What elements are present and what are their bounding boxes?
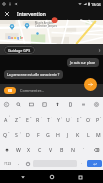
staticText: ' <box>83 147 84 152</box>
button[interactable]: A <box>0 112 11 127</box>
button[interactable]: Z <box>11 112 22 127</box>
button[interactable]: La personne est-elle consciente ? <box>4 70 63 79</box>
staticText: ?123 <box>4 161 12 166</box>
staticText: Guidage GPS <box>8 48 31 53</box>
staticText: M <box>96 131 101 138</box>
button[interactable]: Stickers <box>38 97 51 112</box>
button[interactable]: V <box>45 142 56 157</box>
button[interactable]: GIF <box>25 97 38 112</box>
staticText: e <box>21 35 24 40</box>
staticText: G <box>8 35 11 40</box>
staticText: S <box>15 131 18 138</box>
staticText: F <box>37 131 40 138</box>
button[interactable]: X <box>23 142 34 157</box>
button[interactable]: Emoji <box>23 157 32 170</box>
staticText: 18:04 <box>91 2 101 7</box>
staticText: ' <box>51 115 52 118</box>
staticText: I <box>77 116 79 123</box>
staticText: K <box>76 131 80 138</box>
staticText: è <box>80 115 82 118</box>
staticText: Musée Anglais - Collection Jacques <box>35 21 58 27</box>
staticText: T <box>47 116 50 123</box>
button[interactable]: U <box>63 112 73 127</box>
button[interactable]: Send message <box>84 78 97 91</box>
button[interactable]: Back <box>18 172 28 182</box>
button[interactable]: Theme <box>51 97 64 112</box>
button[interactable]: L <box>83 127 93 142</box>
staticText: V <box>49 146 53 153</box>
button[interactable]: C <box>34 142 45 157</box>
button[interactable]: T <box>43 112 53 127</box>
button[interactable]: Profile <box>4 87 16 94</box>
staticText: é <box>30 115 32 118</box>
button[interactable]: R <box>33 112 43 127</box>
button[interactable]: ' <box>78 142 89 157</box>
staticText: o <box>11 35 14 40</box>
staticText: Q <box>3 131 8 138</box>
staticText: X <box>27 146 31 153</box>
button[interactable]: B <box>56 142 67 157</box>
button[interactable]: Recents <box>75 172 85 182</box>
button[interactable]: Je suis sur place <box>67 58 99 67</box>
staticText: KB <box>8 89 12 93</box>
staticText: ( <box>61 115 62 118</box>
button[interactable]: H <box>53 127 63 142</box>
button[interactable]: N <box>67 142 78 157</box>
button[interactable]: Home <box>47 172 57 182</box>
staticText: Commenter... <box>20 88 44 93</box>
button[interactable]: M <box>93 127 103 142</box>
button[interactable]: Collapse <box>0 97 12 112</box>
staticText: W <box>16 146 21 153</box>
staticText: Intervention <box>17 11 46 18</box>
button[interactable]: More <box>95 46 103 54</box>
staticText: G <box>46 131 50 138</box>
staticText: L <box>87 131 90 138</box>
staticText: Z <box>15 116 18 123</box>
button[interactable]: P <box>93 112 103 127</box>
button[interactable]: Search <box>12 97 25 112</box>
staticText: à <box>8 130 10 133</box>
staticText: ç <box>100 115 102 118</box>
button[interactable]: Q <box>0 127 11 142</box>
button[interactable]: Close <box>0 8 14 20</box>
staticText: ) <box>20 130 21 133</box>
button[interactable]: , <box>15 157 23 170</box>
staticText: R <box>36 116 40 123</box>
button[interactable]: J <box>63 127 73 142</box>
staticText: O <box>86 116 91 123</box>
staticText: , <box>18 160 20 166</box>
button[interactable]: E <box>22 112 33 127</box>
button[interactable]: D <box>22 127 33 142</box>
staticText: . <box>81 160 83 166</box>
button[interactable]: W <box>13 142 23 157</box>
button[interactable]: Clipboard <box>64 97 77 112</box>
staticText: A <box>4 116 8 123</box>
staticText: La personne est-elle consciente ? <box>7 72 60 77</box>
staticText: N <box>71 146 75 153</box>
staticText: U <box>66 116 70 123</box>
button[interactable]: Settings <box>90 97 103 112</box>
button[interactable]: I <box>73 112 83 127</box>
button[interactable]: K <box>73 127 83 142</box>
button[interactable]: Translate <box>77 97 90 112</box>
staticText: & <box>19 115 21 118</box>
button[interactable]: Enter <box>87 160 102 167</box>
staticText: H <box>56 131 60 138</box>
staticText: D <box>26 131 30 138</box>
staticText: Y <box>57 116 60 123</box>
button[interactable]: G <box>43 127 53 142</box>
button[interactable]: O <box>83 112 93 127</box>
staticText: - <box>71 115 72 118</box>
staticText: P <box>96 116 100 123</box>
button[interactable]: F <box>33 127 43 142</box>
button[interactable]: Backspace <box>89 142 103 157</box>
button[interactable]: ?123 <box>0 157 15 170</box>
button[interactable]: S <box>11 127 22 142</box>
button[interactable]: Y <box>53 112 63 127</box>
button[interactable]: Guidage GPS <box>4 46 35 54</box>
staticText: " <box>41 115 42 118</box>
button[interactable]: Shift <box>0 142 13 157</box>
